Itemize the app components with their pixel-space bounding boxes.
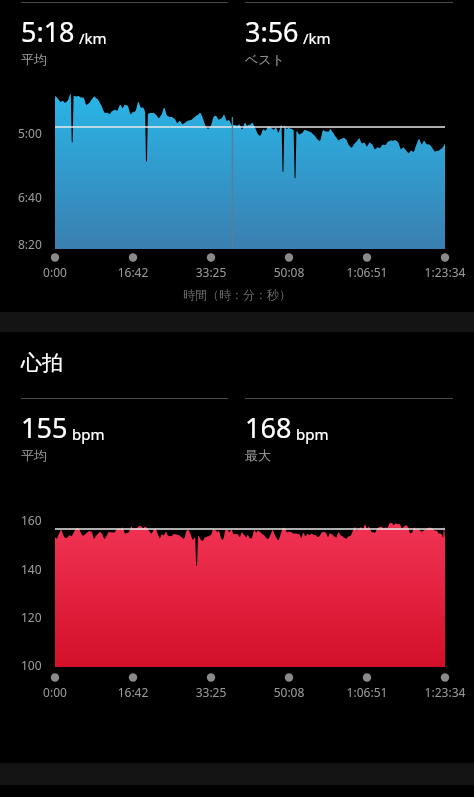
button[interactable]: 心拍	[21, 350, 63, 376]
button[interactable]: 168	[245, 398, 453, 463]
staticText: 120	[21, 609, 42, 625]
staticText: 140	[21, 561, 42, 577]
staticText: 0:00	[21, 264, 89, 280]
staticText: 0:00	[21, 684, 89, 700]
staticText: /km	[303, 28, 331, 48]
staticText: 5:00	[18, 125, 42, 141]
staticText: 33:25	[177, 264, 245, 280]
staticText: 50:08	[255, 684, 323, 700]
staticText: 16:42	[99, 684, 167, 700]
staticText: 1:23:34	[411, 684, 474, 700]
staticText: bpm	[72, 424, 105, 444]
staticText: 100	[21, 657, 42, 673]
staticText: 1:06:51	[333, 264, 401, 280]
staticText: 平均	[21, 51, 47, 67]
button[interactable]: 5:18	[21, 2, 228, 67]
staticText: 5:18	[21, 13, 75, 50]
button[interactable]: 155	[21, 398, 228, 463]
staticText: 1:23:34	[411, 264, 474, 280]
staticText: ベスト	[245, 51, 285, 67]
staticText: 1:06:51	[333, 684, 401, 700]
staticText: 8:20	[18, 236, 42, 252]
staticText: 160	[21, 512, 42, 528]
staticText: 6:40	[18, 189, 42, 205]
staticText: 16:42	[99, 264, 167, 280]
staticText: 50:08	[255, 264, 323, 280]
staticText: 33:25	[177, 684, 245, 700]
staticText: /km	[79, 28, 107, 48]
staticText: bpm	[296, 424, 329, 444]
button[interactable]: 3:56	[245, 2, 453, 67]
staticText: 平均	[21, 447, 47, 463]
staticText: 155	[21, 409, 68, 446]
staticText: 3:56	[245, 13, 299, 50]
staticText: 168	[245, 409, 292, 446]
staticText: 最大	[245, 447, 271, 463]
staticText: 時間（時：分：秒）	[0, 287, 474, 302]
